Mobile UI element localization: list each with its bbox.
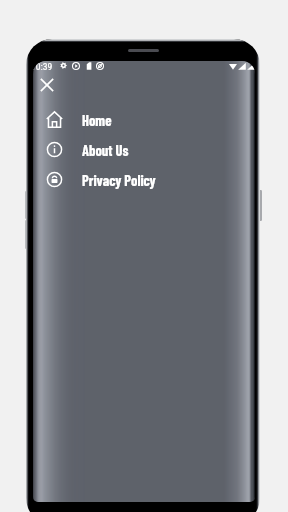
staticText: About Us bbox=[82, 141, 129, 158]
button[interactable]: Privacy Policy bbox=[33, 164, 255, 194]
staticText: 10:39 bbox=[33, 61, 53, 72]
button[interactable]: Close navigation drawer bbox=[40, 78, 54, 92]
button[interactable]: Home bbox=[33, 104, 255, 134]
staticText: Privacy Policy bbox=[82, 171, 156, 188]
button[interactable]: About Us bbox=[33, 134, 255, 164]
staticText: Home bbox=[82, 111, 112, 128]
